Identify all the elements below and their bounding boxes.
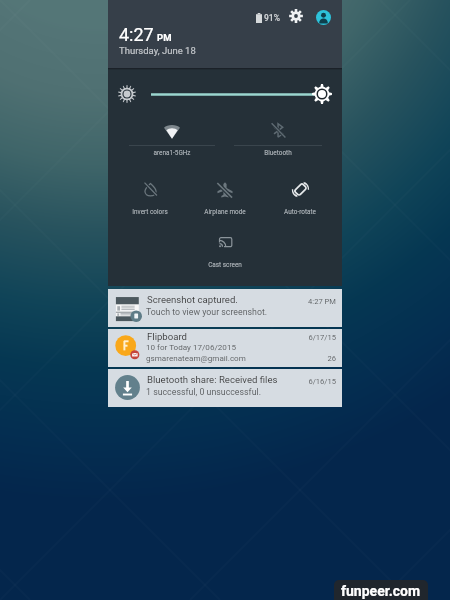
- staticText: 26: [286, 354, 336, 363]
- button[interactable]: Invert colors: [106, 176, 194, 222]
- staticText: Touch to view your screenshot.: [146, 307, 268, 317]
- button[interactable]: arena1-5GHz: [128, 117, 216, 163]
- staticText: Auto-rotate: [284, 208, 316, 216]
- staticText: 1 successful, 0 unsuccessful.: [146, 387, 261, 397]
- staticText: Bluetooth: [264, 149, 292, 157]
- staticText: Flipboard: [147, 331, 188, 342]
- button[interactable]: Cast screen: [181, 229, 269, 275]
- staticText: arena1-5GHz: [153, 149, 191, 157]
- staticText: Airplane mode: [204, 208, 246, 216]
- staticText: 6/16/15: [286, 377, 336, 386]
- staticText: gsmarenateam@gmail.com: [146, 353, 246, 362]
- staticText: Cast screen: [208, 261, 242, 269]
- button[interactable]: Screenshot captured.: [108, 289, 342, 327]
- staticText: Thursday, June 18: [119, 45, 196, 56]
- staticText: Screenshot captured.: [147, 294, 238, 305]
- button[interactable]: Auto-rotate: [256, 176, 344, 222]
- button[interactable]: Bluetooth share: Received files: [108, 369, 342, 407]
- button[interactable]: Flipboard: [108, 329, 342, 367]
- button[interactable]: Brightness: [312, 84, 332, 104]
- staticText: 4:27: [119, 24, 154, 45]
- staticText: PM: [157, 32, 172, 43]
- staticText: Invert colors: [132, 208, 168, 216]
- button[interactable]: Bluetooth: [234, 117, 322, 163]
- button[interactable]: Settings: [288, 8, 304, 24]
- staticText: 10 for Today 17/06/2015: [146, 342, 236, 351]
- button[interactable]: Switch user: [316, 10, 331, 25]
- staticText: Bluetooth share: Received files: [147, 374, 278, 385]
- button[interactable]: Airplane mode: [181, 176, 269, 222]
- staticText: 4:27 PM: [286, 297, 336, 306]
- staticText: funpeer.com: [341, 583, 421, 599]
- staticText: 6/17/15: [286, 333, 336, 342]
- staticText: 91%: [264, 13, 280, 23]
